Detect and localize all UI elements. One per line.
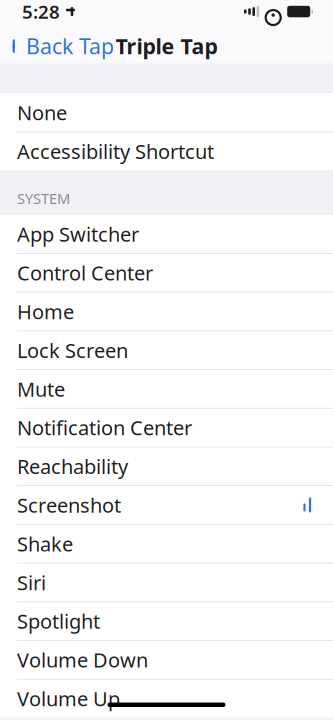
button[interactable]: Volume Up [0, 679, 333, 717]
button[interactable]: Mute [0, 369, 333, 408]
staticText: Mute [17, 376, 65, 402]
button[interactable]: Shake [0, 524, 333, 563]
staticText: None [17, 99, 67, 126]
staticText: SYSTEM [17, 189, 70, 208]
staticText: App Switcher [17, 221, 139, 247]
staticText: Reachability [17, 453, 128, 480]
button[interactable]: Back Tap [0, 29, 124, 64]
staticText: Volume Down [17, 646, 148, 673]
button[interactable]: Reachability [0, 447, 333, 485]
button[interactable]: None [0, 94, 333, 131]
button[interactable]: Siri [0, 563, 333, 601]
button[interactable]: Home [0, 292, 333, 330]
staticText: Spotlight [17, 608, 100, 634]
staticText: Volume Up [17, 685, 120, 712]
staticText: Home [17, 298, 74, 325]
staticText: Siri [17, 569, 46, 596]
button[interactable]: App Switcher [0, 215, 333, 253]
staticText: Back Tap [26, 32, 114, 60]
staticText: 5:28 [22, 0, 60, 24]
staticText: Lock Screen [17, 337, 128, 363]
button[interactable]: Volume Down [0, 640, 333, 679]
staticText: Triple Tap [115, 32, 217, 60]
staticText: Shake [17, 530, 73, 557]
button[interactable]: Accessibility Shortcut [0, 131, 333, 170]
staticText: Notification Center [17, 414, 192, 441]
staticText: Screenshot [17, 492, 121, 518]
button[interactable]: Notification Center [0, 408, 333, 447]
button[interactable]: Lock Screen [0, 330, 333, 369]
staticText: Control Center [17, 259, 153, 286]
button[interactable]: Screenshot [0, 485, 333, 524]
button[interactable]: Control Center [0, 253, 333, 292]
staticText: Accessibility Shortcut [17, 138, 214, 164]
button[interactable]: Spotlight [0, 601, 333, 640]
